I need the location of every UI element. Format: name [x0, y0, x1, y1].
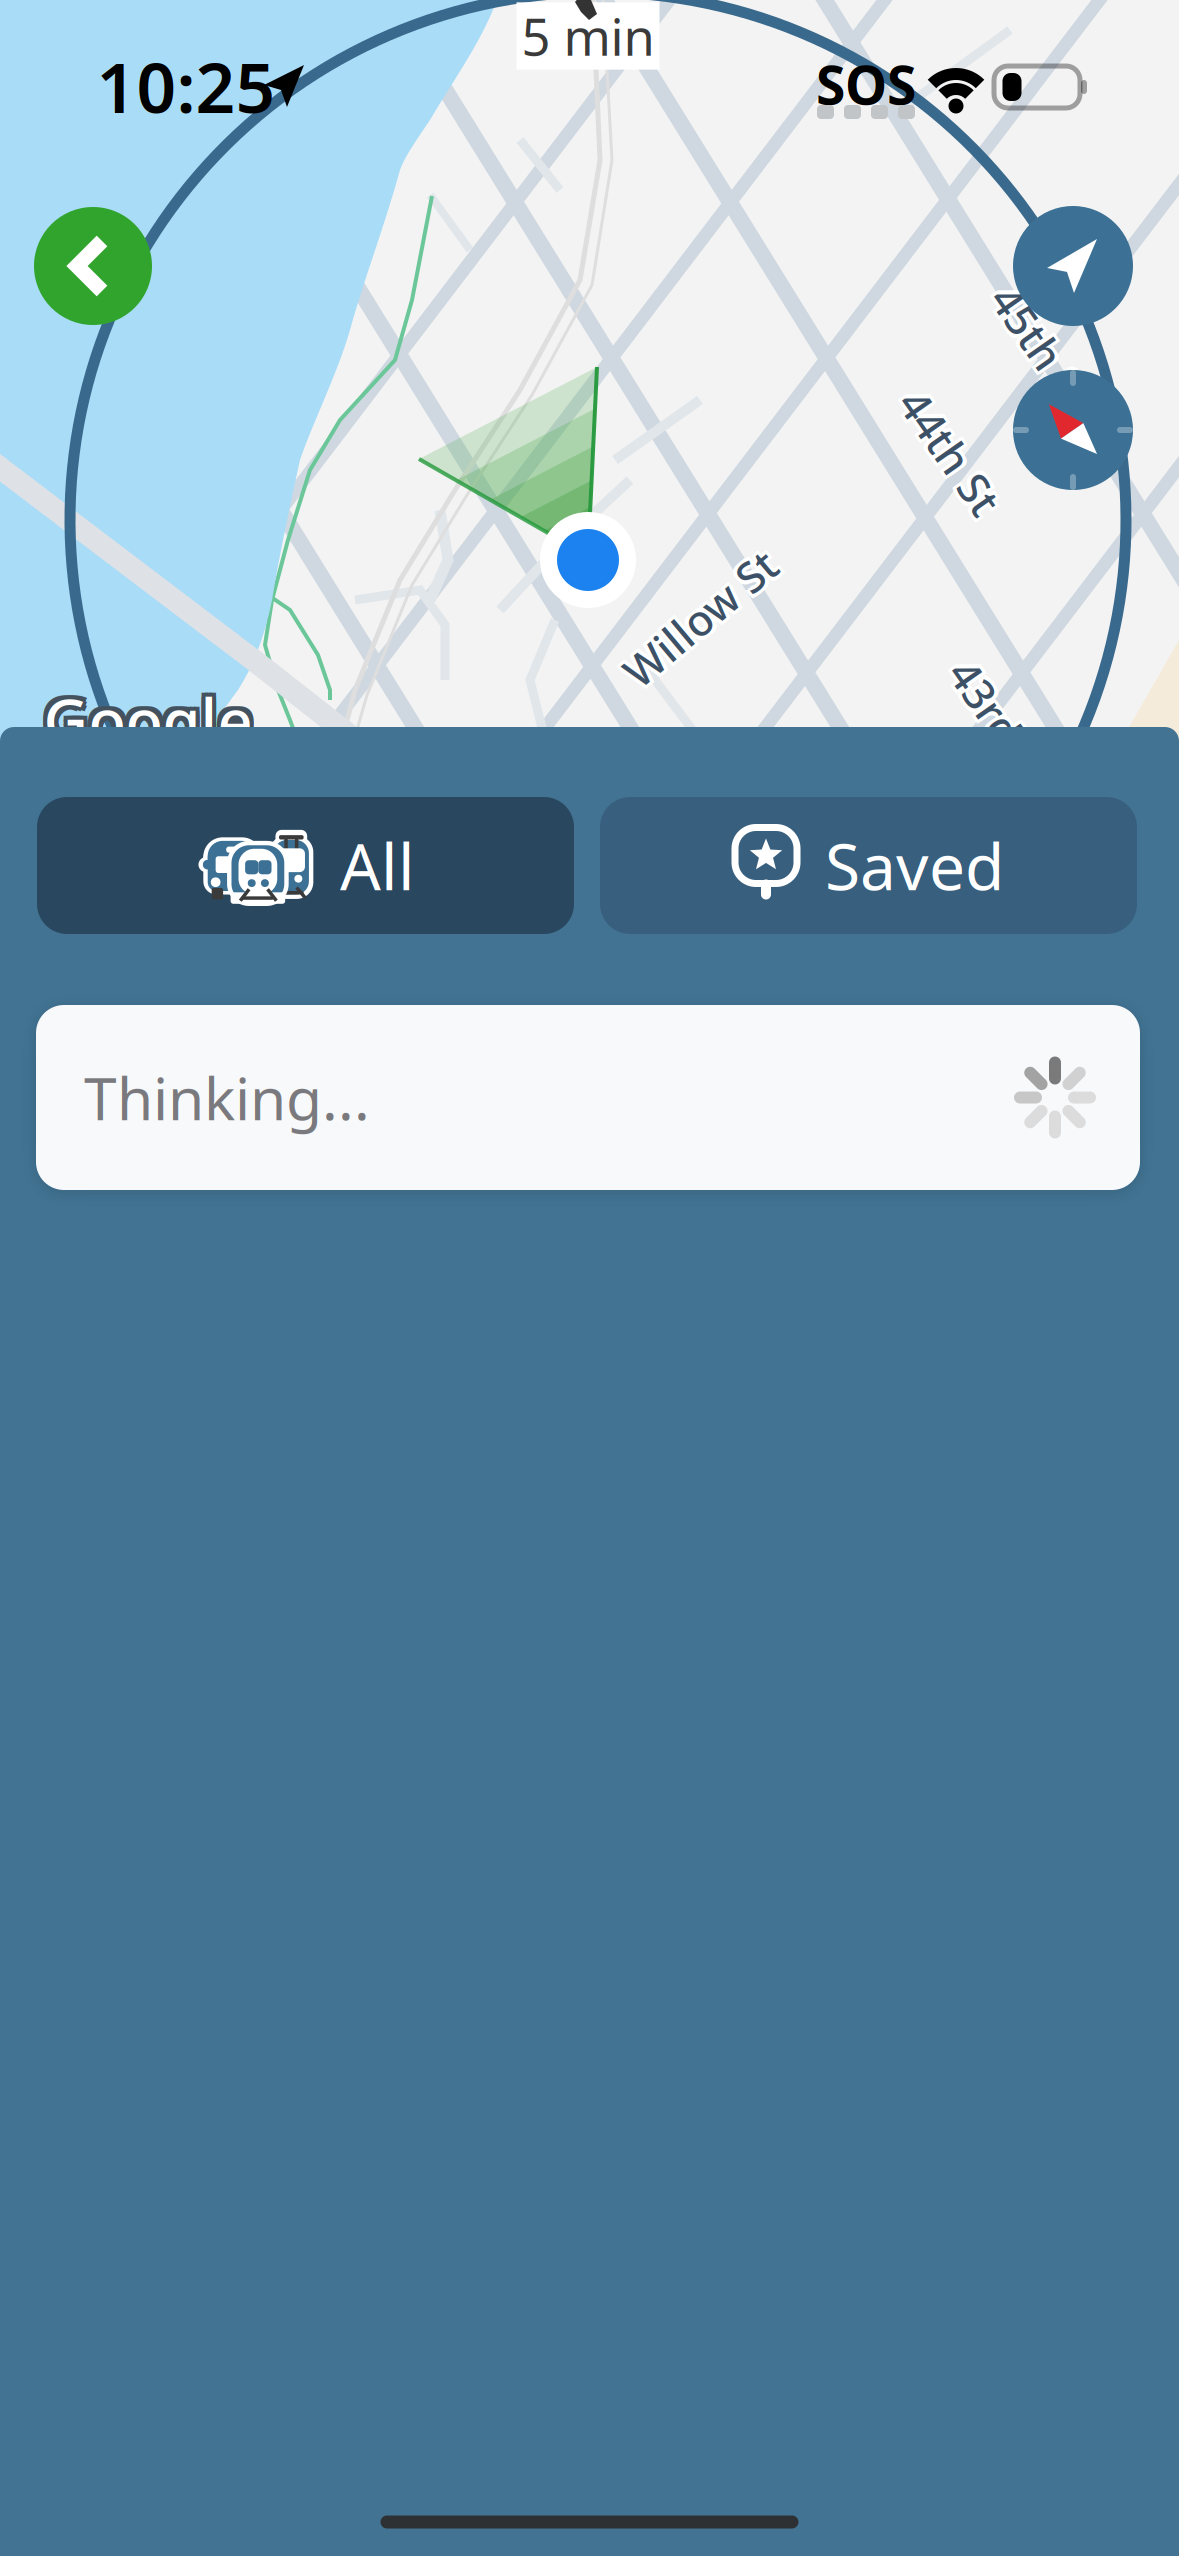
staticText: 45th St	[971, 323, 1112, 379]
staticText: 44th St	[879, 424, 1020, 480]
staticText: 44th St	[879, 427, 1020, 483]
staticText: 43rd St	[926, 691, 1067, 747]
button[interactable]: Compass	[1013, 370, 1133, 490]
staticText: 5 min	[521, 2, 654, 70]
staticText: Google	[47, 675, 256, 757]
button[interactable]: Back	[34, 207, 152, 325]
staticText: Willow St	[604, 590, 789, 646]
staticText: Willow St	[610, 590, 795, 646]
staticText: 45th St	[968, 323, 1109, 379]
staticText: 44th St	[882, 421, 1023, 477]
staticText: 44th St	[879, 421, 1020, 477]
staticText: Thinking...	[84, 1058, 370, 1136]
staticText: 43rd St	[932, 694, 1073, 750]
staticText: 45th St	[974, 317, 1115, 373]
staticText: 44th St	[876, 427, 1017, 483]
staticText: Willow St	[604, 587, 789, 643]
staticText: 43rd St	[926, 697, 1067, 753]
staticText: Willow St	[607, 590, 792, 646]
staticText: 10:25	[96, 40, 275, 132]
staticText: 43rd St	[932, 691, 1073, 747]
staticText: Google	[47, 679, 256, 761]
staticText: Google	[43, 679, 252, 761]
staticText: SOS	[816, 49, 916, 119]
staticText: Willow St	[607, 587, 792, 643]
staticText: Google	[39, 679, 248, 761]
staticText: 43rd St	[929, 694, 1070, 750]
button[interactable]: Recenter map	[1013, 206, 1133, 326]
staticText: 43rd St	[926, 694, 1067, 750]
staticText: 43rd St	[932, 697, 1073, 753]
staticText: Willow St	[607, 593, 792, 649]
staticText: 45th St	[968, 320, 1109, 376]
staticText: Google	[39, 675, 248, 757]
staticText: 44th St	[876, 421, 1017, 477]
staticText: 45th St	[968, 317, 1109, 373]
staticText: Willow St	[610, 587, 795, 643]
staticText: Google	[43, 675, 252, 757]
staticText: 45th St	[974, 323, 1115, 379]
staticText: Google	[39, 683, 248, 765]
staticText: 44th St	[882, 424, 1023, 480]
staticText: 44th St	[876, 424, 1017, 480]
staticText: 45th St	[974, 320, 1115, 376]
staticText: 43rd St	[929, 691, 1070, 747]
staticText: Google	[47, 683, 256, 765]
staticText: Google	[43, 683, 252, 765]
staticText: 45th St	[971, 317, 1112, 373]
staticText: 45th St	[971, 320, 1112, 376]
button[interactable]: Saved	[600, 797, 1137, 934]
staticText: 43rd St	[929, 697, 1070, 753]
staticText: All	[340, 823, 415, 908]
staticText: Willow St	[610, 593, 795, 649]
staticText: 44th St	[882, 427, 1023, 483]
staticText: Saved	[825, 823, 1004, 908]
button[interactable]: All	[37, 797, 574, 934]
staticText: Willow St	[604, 593, 789, 649]
